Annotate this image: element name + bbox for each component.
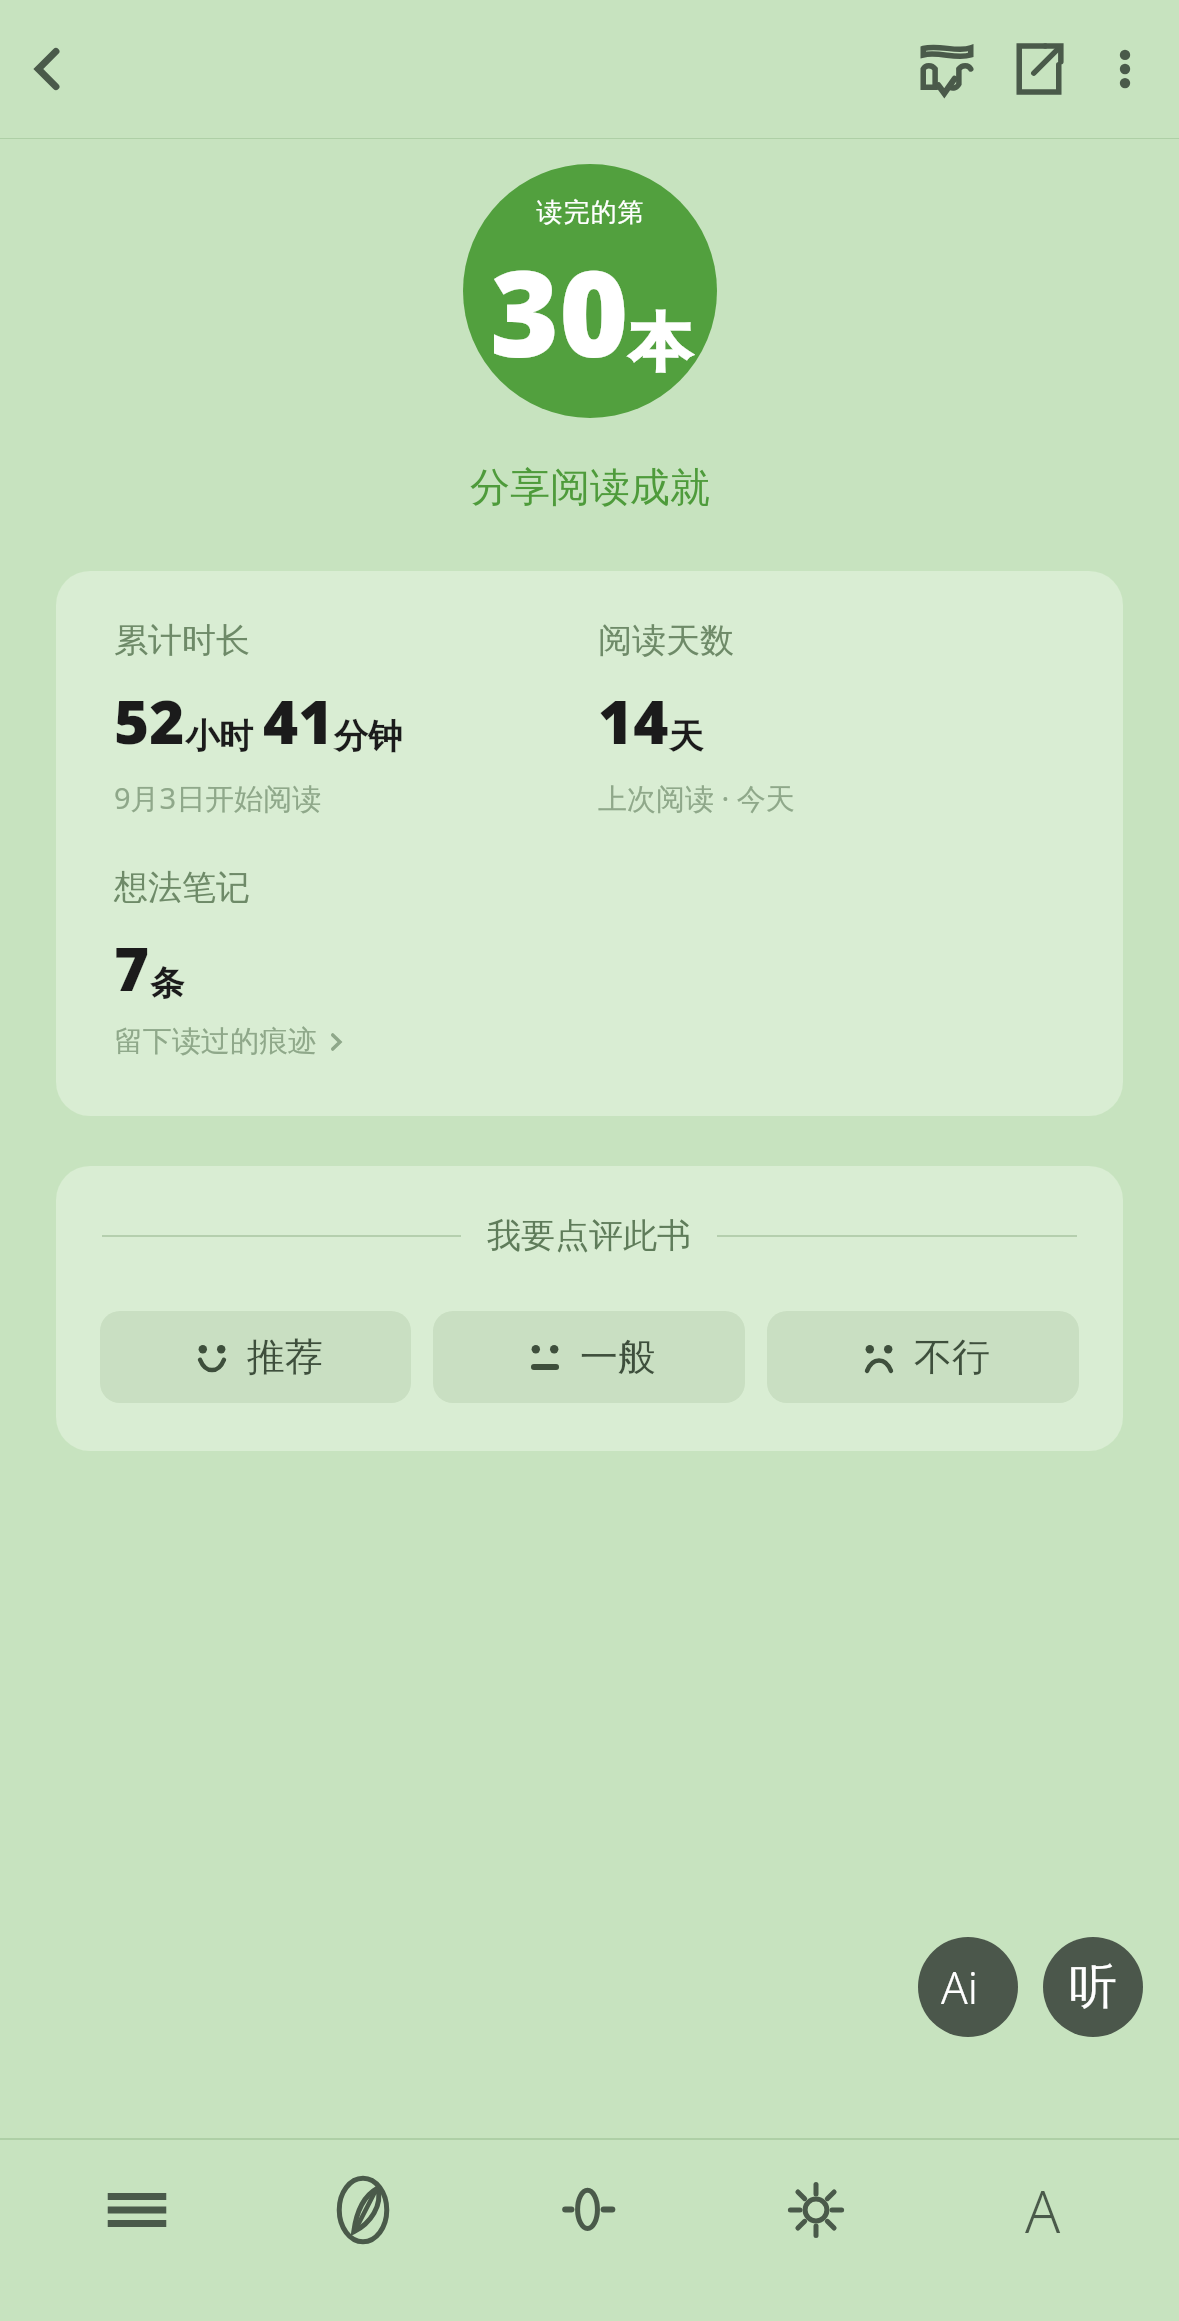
button[interactable]: Notes [273, 2140, 453, 2280]
staticText: 上次阅读 · 今天 [598, 778, 795, 818]
staticText: 52 [114, 680, 185, 762]
staticText: 条 [150, 962, 184, 1005]
button[interactable]: 不行 [767, 1311, 1079, 1403]
button[interactable]: 一般 [433, 1311, 745, 1403]
button[interactable]: 推荐 [100, 1311, 411, 1403]
staticText: 9月3日开始阅读 [114, 778, 322, 818]
staticText: 30 [490, 231, 629, 392]
staticText: 本 [629, 304, 691, 382]
staticText: 小时 [185, 715, 253, 758]
button[interactable]: Finished reading [901, 23, 993, 115]
staticText: 41 [263, 680, 334, 762]
staticText: Ai [941, 1957, 978, 2017]
staticText: 分享阅读成就 [470, 462, 710, 512]
button[interactable]: Font size [953, 2140, 1133, 2280]
staticText: 留下读过的痕迹 [114, 1023, 317, 1060]
staticText: 天 [669, 715, 703, 758]
staticText: A [1025, 2171, 1061, 2250]
staticText: 想法笔记 [114, 866, 250, 909]
button[interactable]: Brightness [726, 2140, 906, 2280]
button[interactable]: Menu [47, 2140, 227, 2280]
staticText: 阅读天数 [598, 619, 734, 662]
button[interactable]: AI assistant [918, 1937, 1018, 2037]
staticText: 7 [114, 927, 150, 1009]
staticText: 一般 [580, 1333, 656, 1381]
button[interactable]: Share [993, 23, 1085, 115]
button[interactable]: 分享阅读成就 [446, 454, 734, 520]
staticText: 累计时长 [114, 619, 250, 662]
button[interactable]: Back [8, 29, 88, 109]
staticText: 14 [598, 680, 669, 762]
button[interactable]: More options [1085, 29, 1165, 109]
button[interactable]: Listen [1043, 1937, 1143, 2037]
staticText: 我要点评此书 [487, 1214, 691, 1257]
staticText: 分钟 [334, 715, 402, 758]
button[interactable]: 想法笔记 [114, 866, 347, 1060]
staticText: 听 [1069, 1957, 1117, 2017]
staticText: 不行 [914, 1333, 990, 1381]
button[interactable]: Progress [500, 2140, 680, 2280]
staticText: 推荐 [247, 1333, 323, 1381]
staticText: 读完的第 [536, 196, 644, 229]
